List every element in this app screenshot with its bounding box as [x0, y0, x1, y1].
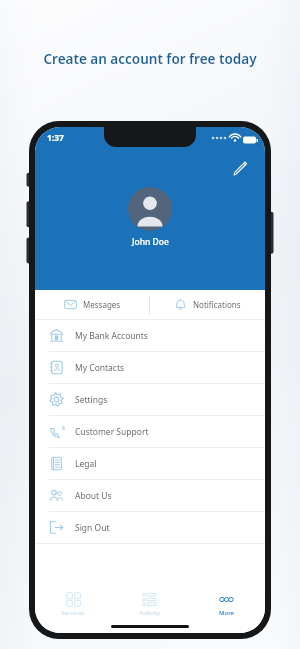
- button[interactable]: About Us: [35, 480, 265, 511]
- staticText: Messages: [83, 299, 121, 310]
- button[interactable]: My Contacts: [35, 352, 265, 383]
- staticText: Sign Out: [75, 522, 110, 534]
- staticText: Settings: [75, 394, 108, 406]
- button[interactable]: Edit profile: [227, 155, 253, 181]
- staticText: My Bank Accounts: [75, 330, 148, 342]
- button[interactable]: Notifications: [150, 290, 265, 319]
- staticText: 1:37: [47, 132, 64, 144]
- button[interactable]: Sign Out: [35, 512, 265, 543]
- button[interactable]: Messages: [35, 290, 149, 319]
- staticText: Services: [61, 609, 85, 617]
- staticText: Activity: [139, 609, 161, 617]
- staticText: My Contacts: [75, 362, 125, 374]
- staticText: Customer Support: [75, 426, 149, 438]
- button[interactable]: Customer Support: [35, 416, 265, 447]
- staticText: About Us: [75, 490, 112, 502]
- staticText: Notifications: [193, 299, 241, 310]
- button[interactable]: Settings: [35, 384, 265, 415]
- staticText: More: [219, 609, 235, 617]
- button[interactable]: Services: [35, 592, 111, 617]
- button[interactable]: Legal: [35, 448, 265, 479]
- staticText: Legal: [75, 458, 97, 470]
- button[interactable]: My Bank Accounts: [35, 320, 265, 351]
- staticText: Create an account for free today: [0, 50, 300, 68]
- staticText: John Doe: [132, 236, 169, 248]
- button[interactable]: More: [188, 592, 265, 617]
- button[interactable]: Activity: [111, 592, 188, 617]
